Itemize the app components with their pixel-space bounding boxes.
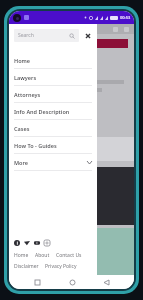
- button[interactable]: Back: [100, 276, 112, 288]
- button[interactable]: Disclaimer: [14, 263, 39, 270]
- button[interactable]: Instagram: [44, 240, 50, 246]
- other: Search: [69, 33, 75, 39]
- button[interactable]: Twitter: [24, 240, 30, 246]
- button[interactable]: Search: [14, 29, 79, 42]
- staticText: Attorneys: [14, 91, 41, 98]
- button[interactable]: Close menu: [83, 31, 92, 40]
- button[interactable]: Recents: [31, 276, 43, 288]
- button[interactable]: Lawyers: [9, 69, 97, 86]
- staticText: Info And Description: [14, 108, 70, 115]
- button[interactable]: Privacy Policy: [45, 263, 77, 270]
- button[interactable]: Home: [9, 52, 97, 69]
- staticText: Home: [14, 57, 31, 64]
- staticText: 00:53: [120, 15, 131, 20]
- staticText: About: [35, 252, 50, 259]
- button[interactable]: Home: [66, 276, 78, 288]
- staticText: Disclaimer: [14, 263, 39, 270]
- staticText: Search: [18, 32, 34, 39]
- button[interactable]: Cases: [9, 120, 97, 137]
- staticText: Privacy Policy: [45, 263, 77, 270]
- button[interactable]: Facebook: [14, 240, 20, 246]
- staticText: Contact Us: [56, 252, 82, 259]
- staticText: How To - Guides: [14, 142, 57, 149]
- button[interactable]: About: [35, 252, 50, 259]
- button[interactable]: How To - Guides: [9, 137, 97, 154]
- button[interactable]: Contact Us: [56, 252, 82, 259]
- staticText: Home: [14, 252, 29, 259]
- button[interactable]: Info And Description: [9, 103, 97, 120]
- staticText: More: [14, 159, 28, 166]
- button[interactable]: YouTube: [34, 240, 40, 246]
- button[interactable]: More: [9, 154, 97, 171]
- staticText: Lawyers: [14, 74, 37, 81]
- button[interactable]: Attorneys: [9, 86, 97, 103]
- staticText: Cases: [14, 125, 30, 132]
- button[interactable]: Home: [14, 252, 29, 259]
